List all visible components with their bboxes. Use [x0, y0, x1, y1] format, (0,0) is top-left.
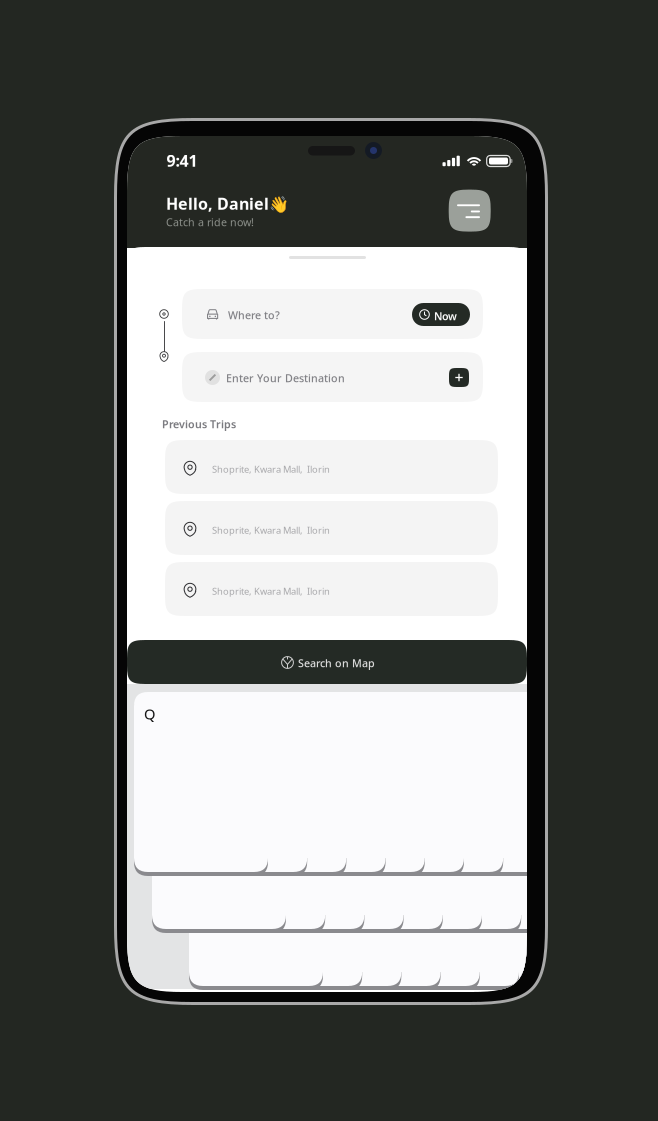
staticText: Shoprite, Kwara Mall, Ilorin [212, 585, 330, 597]
button[interactable]: Shoprite, Kwara Mall, Ilorin [165, 440, 498, 494]
button[interactable]: Enter Your Destination [182, 352, 483, 402]
staticText: Enter Your Destination [226, 371, 345, 385]
staticText: Shoprite, Kwara Mall, Ilorin [212, 524, 330, 536]
button[interactable]: Shoprite, Kwara Mall, Ilorin [165, 501, 498, 555]
staticText: Now [434, 309, 457, 323]
staticText: Shoprite, Kwara Mall, Ilorin [212, 463, 330, 475]
staticText: Catch a ride now! [166, 215, 254, 229]
staticText: Where to? [228, 308, 280, 322]
button[interactable]: Where to? [182, 289, 483, 339]
button[interactable]: Search on Map [127, 640, 527, 684]
button[interactable]: Menu [449, 190, 491, 232]
button[interactable]: Shoprite, Kwara Mall, Ilorin [165, 562, 498, 616]
staticText: Search on Map [298, 656, 375, 670]
staticText: 9:41 [166, 150, 197, 171]
staticText: Hello, Daniel👋 [166, 193, 289, 214]
staticText: Q [144, 704, 155, 723]
staticText: Previous Trips [162, 417, 236, 431]
